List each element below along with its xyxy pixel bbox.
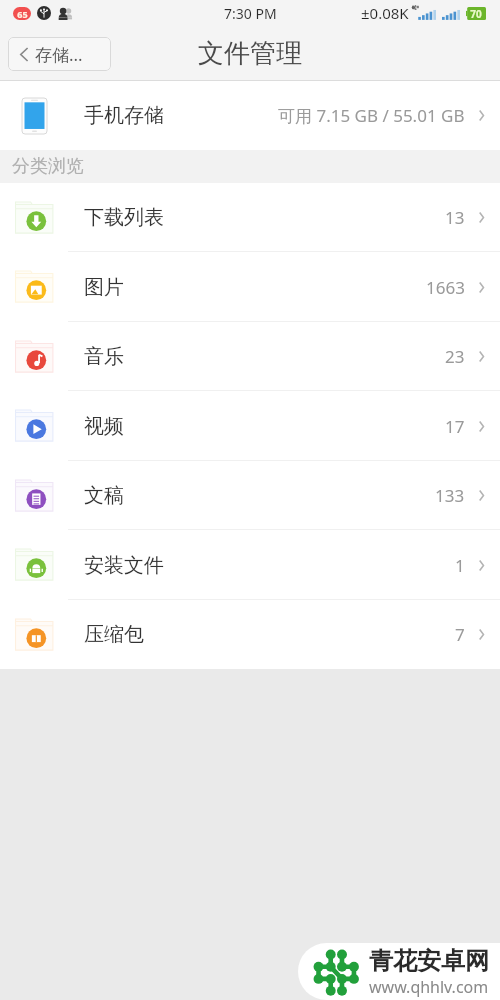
staticText: www.qhhlv.com (369, 976, 489, 998)
staticText: ±0.08K (361, 3, 409, 23)
staticText: 7:30 PM (224, 4, 277, 23)
staticText: 133 (435, 484, 465, 507)
staticText: 视频 (84, 414, 124, 439)
button[interactable]: 音乐 (0, 322, 500, 391)
staticText: 70 (470, 7, 482, 20)
staticText: 1 (455, 554, 465, 577)
staticText: 青花安卓网 (369, 946, 489, 976)
button[interactable]: 存储... (8, 37, 111, 71)
staticText: 1663 (426, 276, 465, 299)
button[interactable]: 压缩包 (0, 600, 500, 669)
staticText: 手机存储 (84, 103, 164, 128)
staticText: 压缩包 (84, 622, 144, 647)
button[interactable]: 文稿 (0, 461, 500, 530)
staticText: 图片 (84, 275, 124, 300)
staticText: 17 (445, 415, 465, 438)
staticText: 音乐 (84, 344, 124, 369)
button[interactable]: 手机存储 (0, 81, 500, 150)
staticText: 23 (445, 345, 465, 368)
staticText: 安装文件 (84, 553, 164, 578)
staticText: 存储... (35, 43, 83, 66)
staticText: 文稿 (84, 483, 124, 508)
staticText: 下载列表 (84, 205, 164, 230)
staticText: 文件管理 (198, 37, 302, 70)
staticText: 分类浏览 (12, 155, 84, 178)
staticText: 7 (455, 623, 465, 646)
button[interactable]: 视频 (0, 391, 500, 461)
staticText: 13 (445, 206, 465, 229)
button[interactable]: 图片 (0, 252, 500, 322)
staticText: 65 (17, 8, 28, 20)
button[interactable]: 下载列表 (0, 183, 500, 252)
button[interactable]: 安装文件 (0, 530, 500, 600)
staticText: 可用 7.15 GB / 55.01 GB (278, 104, 465, 127)
